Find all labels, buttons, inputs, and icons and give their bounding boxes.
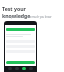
button[interactable]: Tab 1: [5, 22, 36, 71]
staticText: Test your: [2, 5, 26, 12]
button[interactable]: Tab 3: [22, 67, 26, 70]
staticText: Take a quiz and see how much you know: [2, 15, 52, 19]
button[interactable]: [6, 61, 35, 64]
button[interactable]: Tab 1: [8, 67, 12, 70]
button[interactable]: Tab 4: [29, 67, 33, 70]
staticText: knowledge: [2, 12, 31, 19]
button[interactable]: Tab 2: [15, 67, 19, 70]
